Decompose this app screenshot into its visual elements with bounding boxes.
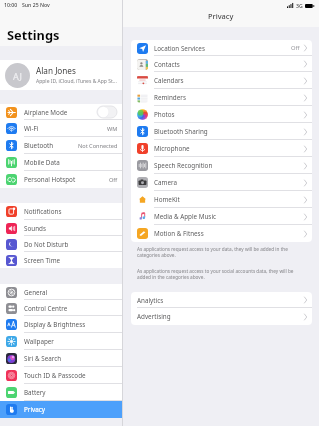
staticText: Media & Apple Music [154,212,217,221]
staticText: Do Not Disturb [24,240,69,249]
button[interactable]: Motion & Fitness [131,225,312,242]
staticText: Wi-Fi [24,124,39,133]
staticText: Siri & Search [24,354,62,363]
button[interactable]: Microphone [131,140,312,157]
button[interactable]: Mobile Data [0,154,122,171]
button[interactable]: Screen Time [0,252,122,268]
staticText: Screen Time [24,256,61,265]
staticText: Sun 25 Nov [22,1,50,8]
staticText: Privacy [208,11,234,21]
button[interactable]: Bluetooth [0,137,122,154]
staticText: Calendars [154,76,184,85]
staticText: Contacts [154,60,180,69]
button[interactable]: Media & Apple Music [131,208,312,225]
staticText: AJ [13,70,23,82]
button[interactable]: Wi-Fi [0,120,122,137]
button[interactable]: Reminders [131,89,312,106]
staticText: Display & Brightness [24,320,86,329]
staticText: Not Connected [78,142,118,150]
staticText: General [24,288,48,297]
staticText: Speech Recognition [154,161,213,170]
staticText: Location Services [154,44,205,53]
staticText: As applications request access to your s… [137,268,308,280]
button[interactable]: AJ [0,60,122,90]
button[interactable]: Personal Hotspot [0,171,122,188]
staticText: Reminders [154,93,186,102]
button[interactable]: Touch ID & Passcode [0,367,122,384]
staticText: Control Centre [24,304,68,313]
staticText: Privacy [24,405,46,414]
staticText: Bluetooth [24,141,54,150]
button[interactable]: HomeKit [131,191,312,208]
staticText: Alan Jones [36,65,76,76]
staticText: Advertising [137,312,171,321]
staticText: 3G [296,2,303,9]
button[interactable]: Calendars [131,72,312,89]
button[interactable]: Bluetooth Sharing [131,123,312,140]
staticText: Bluetooth Sharing [154,127,208,136]
button[interactable]: Advertising [131,308,312,325]
button[interactable]: Analytics [131,292,312,308]
staticText: HomeKit [154,195,180,204]
staticText: Notifications [24,207,62,216]
staticText: Mobile Data [24,158,60,167]
button[interactable]: General [0,284,122,300]
button[interactable]: Airplane Mode [0,104,122,120]
button[interactable]: Display & Brightness [0,316,122,333]
staticText: Microphone [154,144,190,153]
staticText: WM [107,125,118,133]
staticText: Battery [24,388,46,397]
button[interactable]: Control Centre [0,300,122,316]
button[interactable]: Sounds [0,220,122,236]
button[interactable]: Speech Recognition [131,157,312,174]
staticText: Touch ID & Passcode [24,371,86,380]
button[interactable]: Notifications [0,203,122,220]
staticText: Apple ID, iCloud, iTunes & App St... [36,78,117,85]
staticText: Camera [154,178,177,187]
staticText: As applications request access to your d… [137,246,305,258]
staticText: Motion & Fitness [154,229,204,238]
staticText: Off [109,176,118,184]
button[interactable]: Photos [131,106,312,123]
staticText: Sounds [24,224,46,233]
button[interactable]: Privacy [0,401,122,418]
staticText: Personal Hotspot [24,175,76,184]
button[interactable]: Siri & Search [0,350,122,367]
button[interactable]: Camera [131,174,312,191]
staticText: Airplane Mode [24,108,68,117]
button[interactable]: Battery [0,384,122,401]
button[interactable]: Location Services [131,40,312,56]
button[interactable]: Wallpaper [0,333,122,350]
staticText: 10:00 [4,1,18,8]
button[interactable]: Do Not Disturb [0,236,122,252]
staticText: Wallpaper [24,337,54,346]
staticText: Off [291,44,300,52]
staticText: Analytics [137,296,164,305]
button[interactable]: Contacts [131,56,312,72]
staticText: Settings [7,26,60,43]
staticText: Photos [154,110,175,119]
